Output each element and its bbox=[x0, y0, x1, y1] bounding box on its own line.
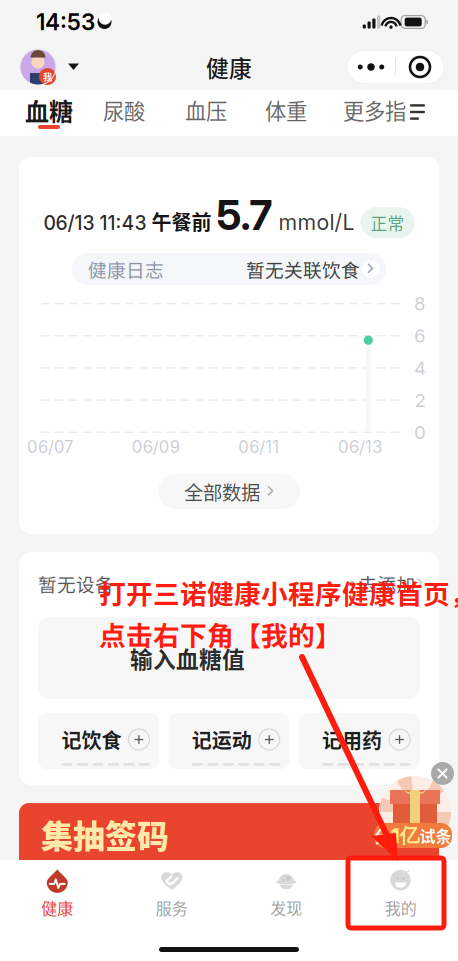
button[interactable]: 记用药 bbox=[299, 713, 420, 769]
button[interactable]: 发现 bbox=[229, 860, 343, 927]
staticText: 全部数据 bbox=[184, 477, 260, 505]
staticText: 暂无关联饮食 bbox=[246, 255, 360, 282]
staticText: 06/07 bbox=[27, 437, 73, 457]
staticText: 血糖 bbox=[25, 93, 73, 127]
staticText: 集抽签码 bbox=[41, 811, 169, 857]
staticText: 输入血糖值 bbox=[130, 642, 245, 674]
staticText: 记运动 bbox=[192, 725, 252, 754]
button[interactable]: 记运动 bbox=[168, 713, 290, 769]
button[interactable]: 去添加 bbox=[349, 570, 423, 597]
staticText: 8 bbox=[414, 292, 426, 315]
button[interactable]: 体重 bbox=[265, 90, 343, 136]
staticText: 更多指 bbox=[343, 95, 406, 125]
staticText: 2 bbox=[414, 389, 425, 411]
staticText: 1亿 bbox=[390, 823, 419, 848]
staticText: 记饮食 bbox=[61, 725, 121, 754]
staticText: 午餐前 bbox=[146, 207, 216, 236]
staticText: 更享大牌官方惊喜 bbox=[41, 859, 209, 890]
staticText: 正常 bbox=[370, 211, 404, 235]
button[interactable]: 我的 bbox=[343, 860, 458, 927]
button[interactable]: 更多指 bbox=[343, 90, 403, 136]
button[interactable]: 健康日志 bbox=[19, 240, 439, 285]
button[interactable]: 全部数据 bbox=[158, 458, 300, 509]
button[interactable]: 暂无设备 bbox=[38, 570, 114, 597]
button[interactable]: 输入血糖值 bbox=[19, 597, 439, 699]
staticText: 4 bbox=[414, 357, 426, 379]
button[interactable]: Close mini program bbox=[396, 50, 444, 83]
staticText: 健康 bbox=[41, 896, 73, 919]
button[interactable]: 服务 bbox=[114, 860, 229, 927]
staticText: 暂无设备 bbox=[38, 570, 114, 597]
button[interactable]: 集抽签码 bbox=[19, 803, 439, 898]
staticText: 点击右下角【我的】 bbox=[99, 615, 342, 653]
staticText: 我的 bbox=[385, 896, 417, 919]
staticText: 记用药 bbox=[322, 725, 382, 754]
staticText: 试条 bbox=[419, 824, 451, 847]
button[interactable]: All categories bbox=[410, 90, 450, 134]
staticText: 健康 bbox=[206, 51, 252, 83]
staticText: 血压 bbox=[185, 95, 227, 125]
staticText: 尿酸 bbox=[103, 95, 145, 125]
staticText: 服务 bbox=[156, 896, 188, 919]
staticText: 14:53 bbox=[36, 8, 95, 36]
staticText: 打开三诺健康小程序健康首页， bbox=[99, 573, 458, 612]
staticText bbox=[381, 18, 382, 26]
button[interactable]: Account bbox=[20, 49, 79, 85]
staticText: 06/13 bbox=[338, 437, 382, 457]
staticText: 去添加 bbox=[354, 570, 415, 597]
staticText bbox=[415, 577, 417, 590]
staticText: 5.7 bbox=[216, 190, 272, 240]
staticText: 发现 bbox=[270, 896, 302, 919]
staticText: 06/09 bbox=[132, 437, 180, 457]
staticText: 分 bbox=[374, 824, 390, 847]
staticText bbox=[400, 18, 401, 26]
staticText: 06/11 bbox=[238, 437, 279, 457]
button[interactable]: Close promotion bbox=[0, 0, 454, 785]
button[interactable]: 尿酸 bbox=[103, 90, 185, 136]
staticText: 6 bbox=[414, 324, 426, 347]
staticText: 06/13 11:43 bbox=[43, 211, 146, 235]
staticText: mmol/L bbox=[272, 209, 354, 235]
staticText: 健康日志 bbox=[88, 255, 164, 282]
staticText: 我 bbox=[43, 70, 52, 83]
button[interactable]: 记饮食 bbox=[38, 713, 159, 769]
button[interactable]: 健康 bbox=[0, 860, 114, 927]
staticText: 体重 bbox=[265, 95, 307, 125]
button[interactable]: More bbox=[347, 50, 395, 83]
staticText: 0 bbox=[414, 421, 426, 444]
button[interactable]: 血压 bbox=[185, 90, 265, 136]
button[interactable]: 血糖 bbox=[25, 90, 103, 136]
